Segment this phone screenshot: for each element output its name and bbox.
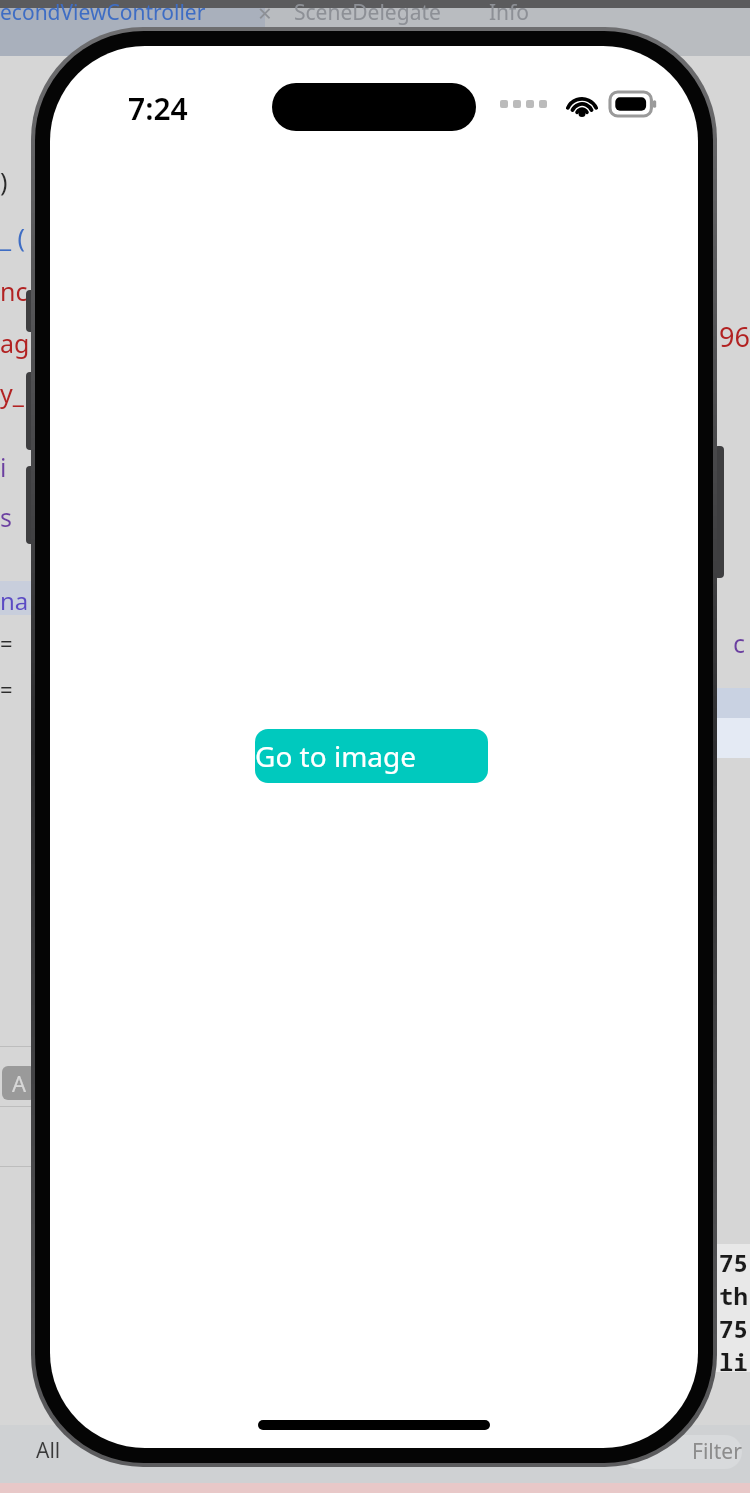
staticText: All [36, 1436, 61, 1465]
staticText: nc [0, 274, 28, 308]
button[interactable]: Go to image page [255, 729, 488, 783]
staticText: Filter [692, 1437, 742, 1466]
staticText: Info [489, 0, 530, 27]
staticText: ) [0, 164, 8, 198]
staticText: Go to image page [255, 737, 488, 775]
staticText: econdViewController [0, 0, 206, 27]
staticText: = [0, 674, 13, 704]
staticText: s [0, 500, 12, 534]
staticText: th [719, 1279, 748, 1312]
staticText: 75 [719, 1246, 748, 1279]
staticText: ch [0, 578, 28, 612]
staticText: × [258, 0, 272, 29]
staticText: ag [0, 326, 30, 360]
staticText: _ ( [0, 220, 26, 254]
other: Dynamic Island [272, 83, 476, 131]
staticText: SceneDelegate [294, 0, 441, 27]
staticText: i [0, 450, 7, 484]
staticText: y_ [0, 376, 24, 410]
staticText: 96 [719, 318, 750, 355]
staticText: na [0, 584, 29, 617]
staticText: A [12, 1068, 27, 1098]
staticText: = [0, 628, 13, 658]
staticText: 75 [719, 1312, 748, 1345]
staticText: 7:24 [128, 88, 188, 129]
staticText: li [719, 1345, 748, 1378]
staticText: c [733, 626, 746, 660]
